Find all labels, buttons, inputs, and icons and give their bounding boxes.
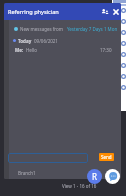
staticText: New messages from [20, 26, 64, 32]
staticText: Referring physician [8, 8, 59, 16]
button[interactable]: Send [99, 153, 114, 161]
button[interactable] [8, 153, 88, 163]
staticText: Hello [26, 47, 37, 53]
button[interactable]: Chat [105, 169, 120, 184]
button[interactable]: Add participant [99, 6, 110, 17]
staticText: View 1 - 16 of 16 [62, 183, 97, 189]
button[interactable]: New messages from [9, 24, 121, 33]
staticText: Send [101, 154, 112, 160]
staticText: 09/06/2021 [34, 38, 58, 44]
staticText: Branch1 [18, 170, 36, 176]
staticText: Today [18, 38, 32, 44]
button[interactable]: Close [110, 6, 121, 17]
staticText: R [92, 171, 97, 182]
staticText: Yesterday 7 Days 1 Mon [67, 26, 118, 32]
staticText: 17:30 [100, 47, 112, 53]
staticText: Me: [15, 47, 24, 53]
button[interactable]: R [87, 169, 102, 184]
